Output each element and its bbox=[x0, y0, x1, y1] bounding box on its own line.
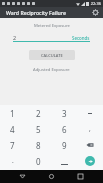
button[interactable]: Enter bbox=[77, 153, 103, 169]
button[interactable] bbox=[77, 106, 103, 121]
staticText: 4 bbox=[10, 124, 15, 135]
other: Enter bbox=[77, 153, 103, 169]
button[interactable]: . bbox=[0, 153, 25, 169]
staticText: 9 bbox=[62, 140, 67, 151]
staticText: 5 bbox=[36, 124, 41, 135]
staticText: 7 bbox=[10, 140, 15, 151]
staticText: Seconds bbox=[72, 35, 90, 41]
button[interactable]: Home bbox=[45, 170, 58, 183]
button[interactable]: Back bbox=[16, 170, 29, 183]
button[interactable]: , bbox=[77, 121, 103, 137]
button[interactable]: 2 bbox=[13, 33, 90, 41]
button[interactable]: 5 bbox=[25, 121, 51, 137]
staticText: , bbox=[89, 124, 91, 133]
staticText: 0 bbox=[36, 156, 41, 167]
button[interactable]: 8 bbox=[25, 137, 51, 153]
staticText: 6 bbox=[62, 124, 67, 135]
staticText: 1 bbox=[10, 108, 15, 119]
button[interactable]: 4 bbox=[0, 121, 25, 137]
staticText: Adjusted Exposure bbox=[33, 67, 70, 73]
button[interactable]: 9 bbox=[51, 137, 77, 153]
staticText: . bbox=[12, 156, 14, 165]
button[interactable]: Backspace bbox=[77, 137, 103, 153]
button[interactable]: 3 bbox=[51, 106, 77, 121]
button[interactable] bbox=[51, 153, 77, 169]
other: Backspace bbox=[77, 137, 103, 153]
button[interactable]: 7 bbox=[0, 137, 25, 153]
button[interactable]: 6 bbox=[51, 121, 77, 137]
button[interactable]: CALCULATE bbox=[29, 50, 75, 60]
staticText: Ward Reciprocity Failure Calculator bbox=[6, 9, 89, 16]
button[interactable]: 2 bbox=[25, 106, 51, 121]
button[interactable]: 0 bbox=[25, 153, 51, 169]
staticText: 2 bbox=[36, 108, 41, 119]
staticText: CALCULATE bbox=[41, 53, 63, 58]
button[interactable]: 1 bbox=[0, 106, 25, 121]
button[interactable]: Recents bbox=[74, 170, 87, 183]
staticText: 2 bbox=[13, 34, 17, 41]
button[interactable]: Settings bbox=[91, 8, 100, 17]
staticText: Metered Exposure bbox=[34, 23, 70, 29]
staticText: 3 bbox=[62, 108, 67, 119]
staticText: 22:36 bbox=[90, 1, 101, 6]
staticText: 8 bbox=[36, 140, 41, 151]
